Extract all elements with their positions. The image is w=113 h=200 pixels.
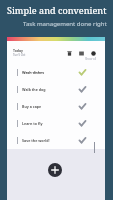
button[interactable]: Save the world!: [7, 132, 105, 149]
button[interactable]: Buy a cape: [7, 98, 105, 115]
button[interactable]: Learn to fly: [7, 115, 105, 132]
staticText: Simple and convenient: [7, 4, 107, 16]
staticText: Show all: [85, 57, 97, 61]
staticText: Task management done right: [23, 20, 107, 28]
staticText: Tue 5 Oct: [13, 53, 26, 57]
button[interactable]: Delete: [65, 49, 74, 58]
button[interactable]: Add task: [48, 163, 62, 177]
staticText: Learn to fly: [22, 121, 43, 126]
staticText: Wash dishes: [22, 70, 45, 75]
button[interactable]: Archive: [77, 49, 86, 58]
staticText: Save the world!: [22, 138, 50, 143]
staticText: Today: [13, 48, 23, 53]
staticText: Walk the dog: [22, 87, 46, 92]
staticText: Buy a cape: [22, 104, 42, 109]
button[interactable]: Account: [89, 49, 98, 58]
button[interactable]: Wash dishes: [7, 64, 105, 81]
button[interactable]: Walk the dog: [7, 81, 105, 98]
